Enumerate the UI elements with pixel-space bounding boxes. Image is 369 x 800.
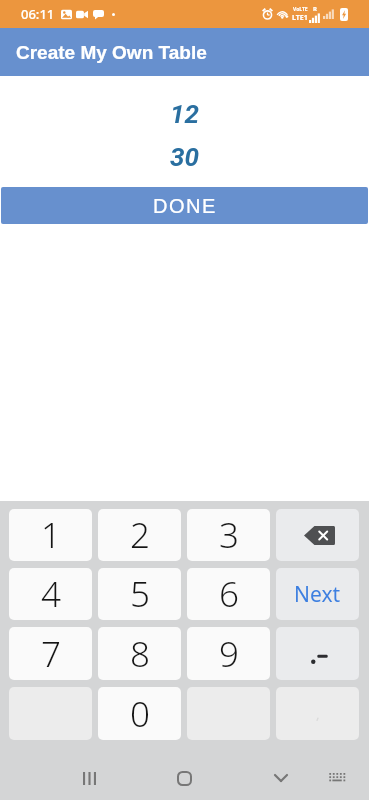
button[interactable]: DONE xyxy=(1,187,368,224)
button[interactable]: 8 xyxy=(98,627,181,680)
button[interactable]: 1 xyxy=(9,509,92,561)
button[interactable]: Recents xyxy=(59,752,119,800)
staticText: R xyxy=(313,5,317,13)
staticText: 6 xyxy=(219,570,239,618)
button[interactable]: Create My Own Table xyxy=(0,28,369,76)
button[interactable]: 12 xyxy=(0,98,369,129)
button[interactable]: Home xyxy=(154,752,214,800)
button[interactable]: Dot and dash xyxy=(276,627,359,680)
button[interactable]: Keyboard xyxy=(307,752,367,800)
staticText: 1 xyxy=(41,511,61,559)
staticText: 2 xyxy=(130,511,150,559)
staticText: Create My Own Table xyxy=(16,42,207,63)
staticText: 12 xyxy=(170,99,199,129)
button[interactable]: 30 xyxy=(0,141,369,172)
staticText: Next xyxy=(294,580,341,609)
staticText: 3 xyxy=(219,511,239,559)
button[interactable]: Hide keyboard xyxy=(251,752,311,800)
staticText: 9 xyxy=(219,630,239,678)
staticText: 7 xyxy=(41,630,61,678)
button[interactable]: 6 xyxy=(187,568,270,620)
button[interactable]: 9 xyxy=(187,627,270,680)
button[interactable]: 0 xyxy=(98,687,181,740)
button[interactable]: 3 xyxy=(187,509,270,561)
button[interactable]: 4 xyxy=(9,568,92,620)
staticText: 30 xyxy=(170,142,199,172)
button[interactable]: Next xyxy=(276,568,359,620)
staticText: , xyxy=(316,705,320,723)
staticText: 06:11 xyxy=(21,5,55,23)
button[interactable]: Backspace xyxy=(276,509,359,561)
staticText: 4 xyxy=(41,570,61,618)
staticText: 8 xyxy=(130,630,150,678)
button[interactable]: 5 xyxy=(98,568,181,620)
staticText: 0 xyxy=(130,690,150,738)
staticText: 5 xyxy=(130,570,150,618)
staticText: DONE xyxy=(153,195,217,217)
button[interactable]: 2 xyxy=(98,509,181,561)
button[interactable]: 7 xyxy=(9,627,92,680)
staticText: LTE1 xyxy=(292,13,308,23)
staticText: VoLTE xyxy=(293,6,308,13)
